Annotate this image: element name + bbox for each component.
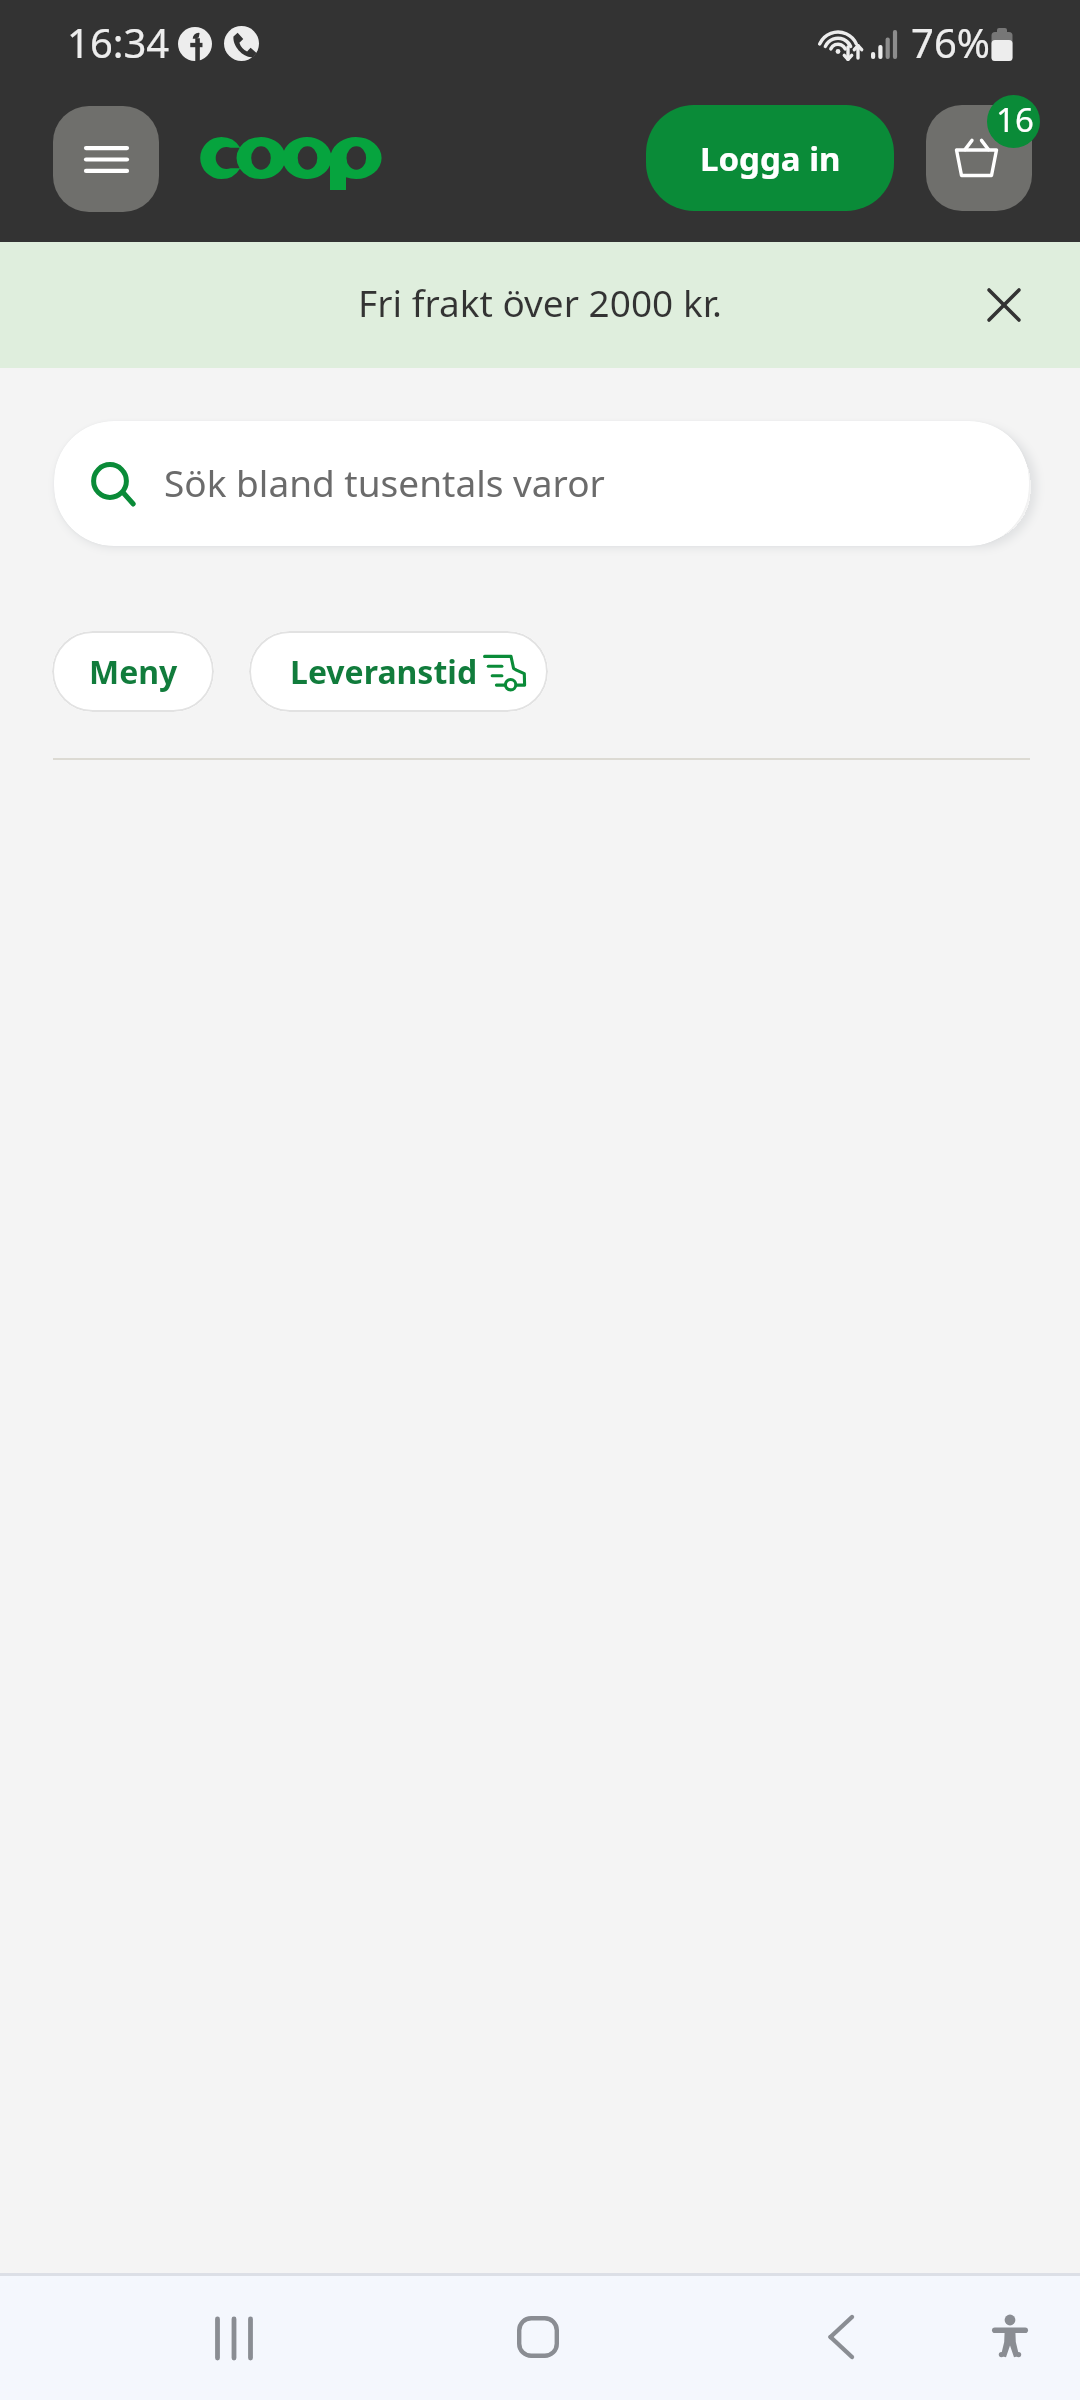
staticText: 76% xyxy=(911,15,990,69)
button[interactable]: Leveranstid xyxy=(249,631,548,712)
button[interactable]: Home xyxy=(473,2273,603,2400)
staticText: 16:34 xyxy=(67,15,170,69)
staticText: Meny xyxy=(89,650,178,694)
staticText: Sök bland tusentals varor xyxy=(164,457,605,507)
button[interactable]: Menu xyxy=(53,106,159,212)
button[interactable]: Recent apps xyxy=(171,2273,301,2400)
button[interactable]: Accessibility xyxy=(945,2273,1075,2400)
staticText: Leveranstid xyxy=(290,650,478,694)
button[interactable]: Sök bland tusentals varor xyxy=(54,421,1029,546)
staticText: 16 xyxy=(996,97,1034,142)
button[interactable]: Shopping basket xyxy=(926,105,1032,211)
staticText: Fri frakt över 2000 kr. xyxy=(358,277,722,327)
button[interactable]: Meny xyxy=(52,631,214,712)
button[interactable]: Logga in xyxy=(646,105,894,211)
button[interactable]: Close banner xyxy=(958,259,1049,350)
button[interactable]: Back xyxy=(776,2273,906,2400)
staticText: Logga in xyxy=(700,136,841,181)
